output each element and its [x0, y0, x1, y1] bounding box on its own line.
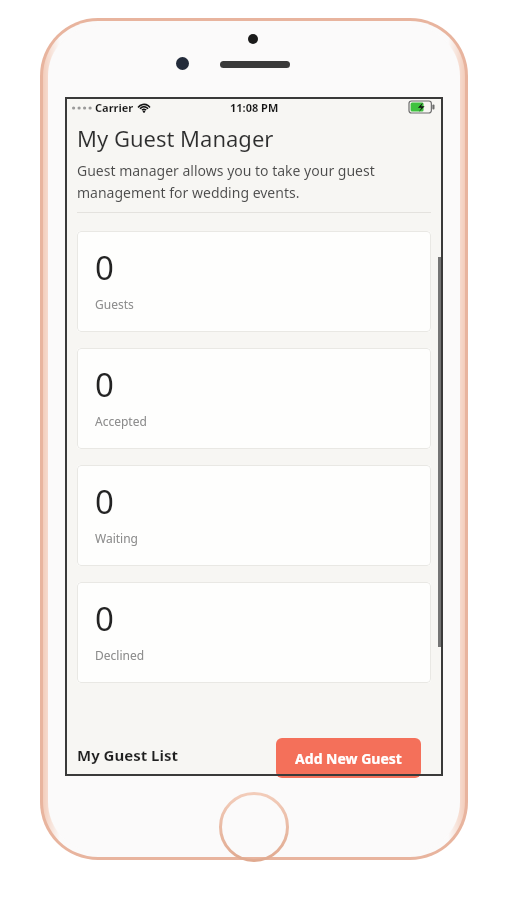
staticText: 0 [95, 362, 114, 407]
staticText: 11:08 PM [230, 100, 279, 115]
staticText: Declined [95, 647, 145, 663]
staticText: My Guest Manager [77, 123, 274, 153]
staticText: Carrier [95, 100, 134, 115]
staticText: My Guest List [77, 745, 179, 765]
staticText: 0 [95, 479, 114, 524]
staticText: Add New Guest [295, 749, 402, 768]
button[interactable]: Add New Guest [276, 738, 421, 778]
button[interactable]: 0 [77, 348, 431, 449]
staticText: 0 [95, 245, 114, 290]
staticText: Guest manager allows you to take your gu… [77, 161, 429, 202]
button[interactable]: 0 [77, 582, 431, 683]
button[interactable]: 0 [77, 231, 431, 332]
button[interactable]: 0 [77, 465, 431, 566]
staticText: Guests [95, 296, 134, 312]
staticText: 0 [95, 596, 114, 641]
staticText: Accepted [95, 413, 147, 429]
staticText: Waiting [95, 530, 138, 546]
